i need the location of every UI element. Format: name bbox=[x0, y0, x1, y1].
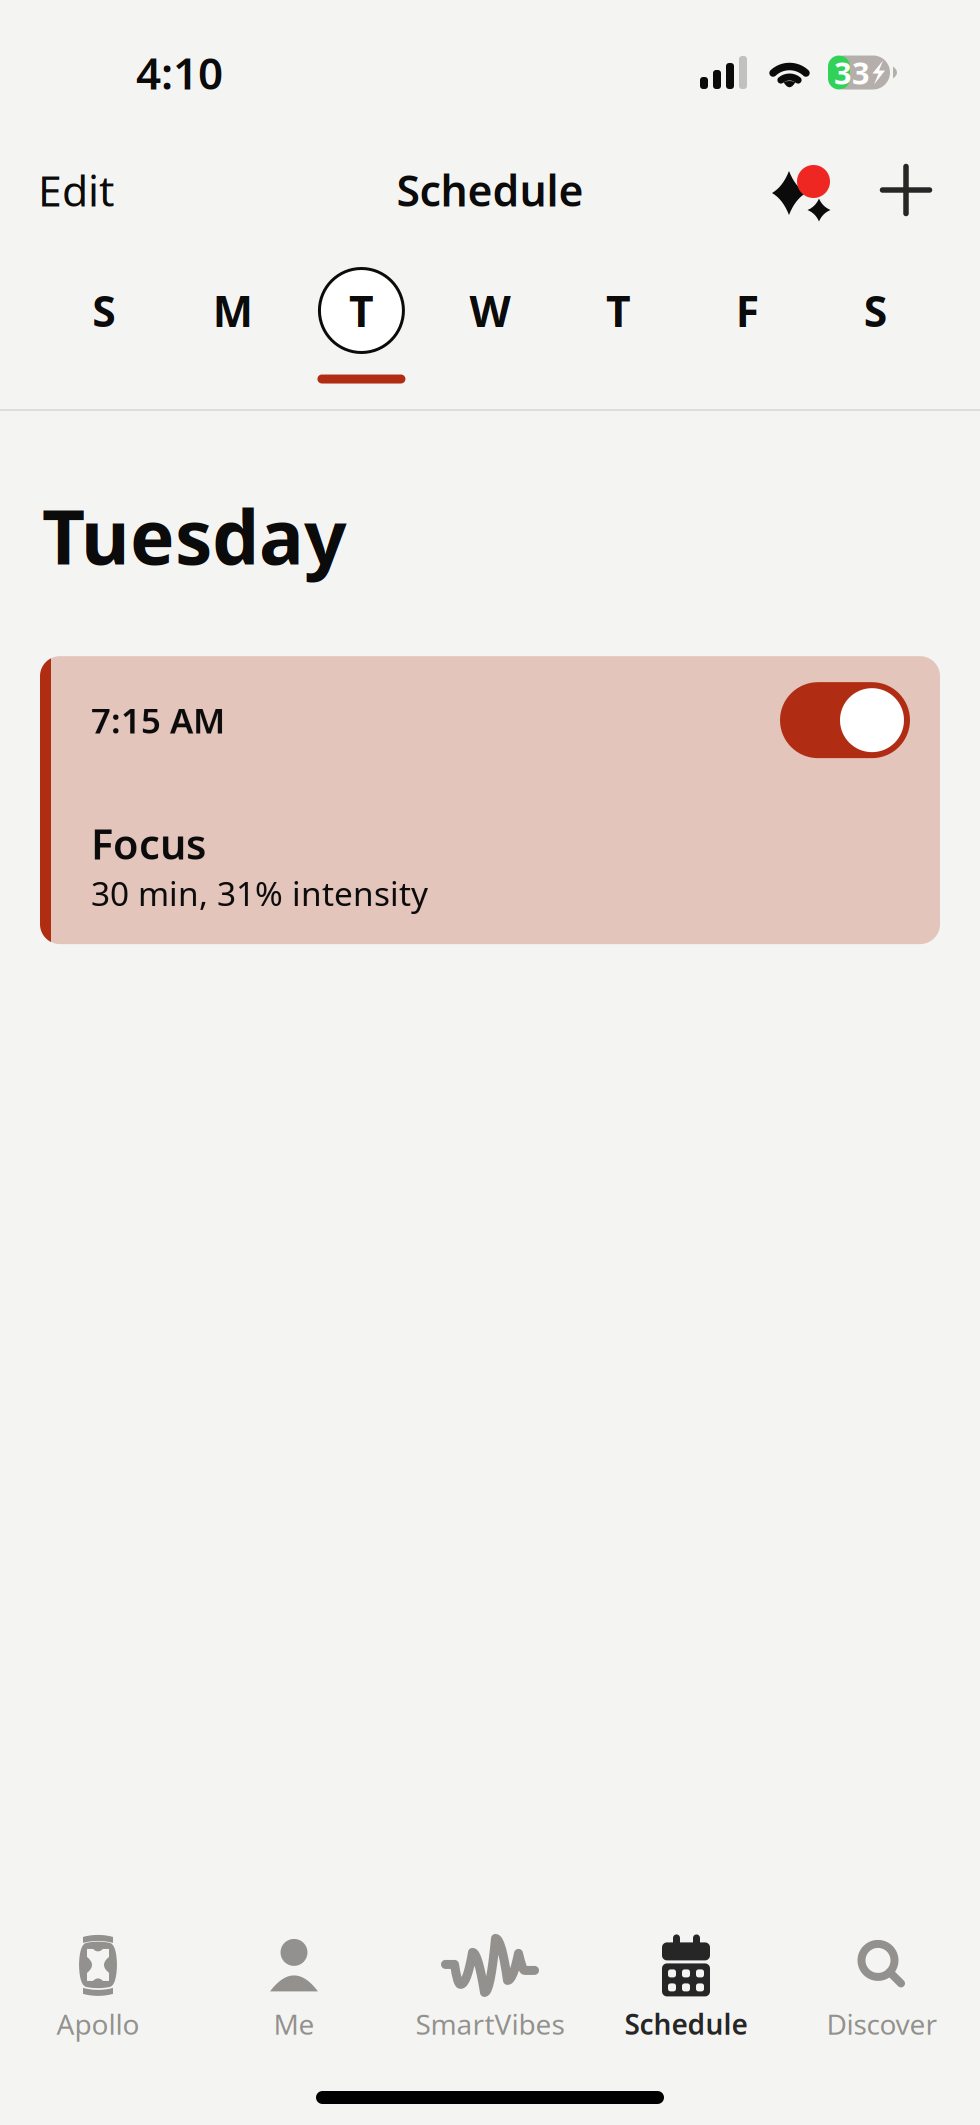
button[interactable]: Discover bbox=[784, 1933, 980, 2045]
button[interactable]: Apollo bbox=[0, 1933, 196, 2045]
staticText: Focus bbox=[91, 816, 206, 871]
staticText: Schedule bbox=[396, 162, 583, 218]
staticText: Me bbox=[273, 2005, 314, 2043]
staticText: Tuesday bbox=[42, 486, 347, 585]
staticText: Schedule bbox=[624, 2005, 747, 2043]
staticText: 7:15 AM bbox=[91, 697, 225, 743]
button[interactable]: Me bbox=[196, 1933, 392, 2045]
button[interactable]: Smart suggestions bbox=[753, 145, 858, 235]
staticText: Edit bbox=[38, 162, 114, 218]
staticText: 33 bbox=[834, 52, 870, 93]
button[interactable]: S bbox=[811, 244, 940, 404]
button[interactable]: Schedule bbox=[588, 1933, 784, 2045]
button[interactable]: SmartVibes bbox=[392, 1933, 588, 2045]
button[interactable]: M bbox=[169, 244, 297, 404]
staticText: Discover bbox=[826, 2005, 937, 2043]
button[interactable]: 7:15 AM bbox=[0, 656, 980, 944]
button[interactable]: Add bbox=[858, 145, 980, 235]
button[interactable]: F bbox=[683, 244, 811, 404]
staticText: 30 min, 31% intensity bbox=[91, 871, 428, 915]
button[interactable]: T bbox=[554, 244, 683, 404]
staticText: SmartVibes bbox=[415, 2005, 564, 2043]
staticText: F bbox=[736, 282, 759, 339]
staticText: S bbox=[92, 282, 116, 339]
staticText: T bbox=[349, 282, 374, 339]
staticText: 4:10 bbox=[136, 43, 223, 102]
button[interactable]: W bbox=[426, 244, 554, 404]
button[interactable]: Edit bbox=[0, 145, 144, 235]
staticText: Apollo bbox=[56, 2005, 139, 2043]
staticText: S bbox=[864, 282, 888, 339]
button[interactable]: T bbox=[297, 244, 426, 404]
staticText: M bbox=[213, 282, 253, 339]
staticText: T bbox=[606, 282, 631, 339]
button[interactable]: S bbox=[40, 244, 169, 404]
staticText: W bbox=[469, 282, 510, 339]
